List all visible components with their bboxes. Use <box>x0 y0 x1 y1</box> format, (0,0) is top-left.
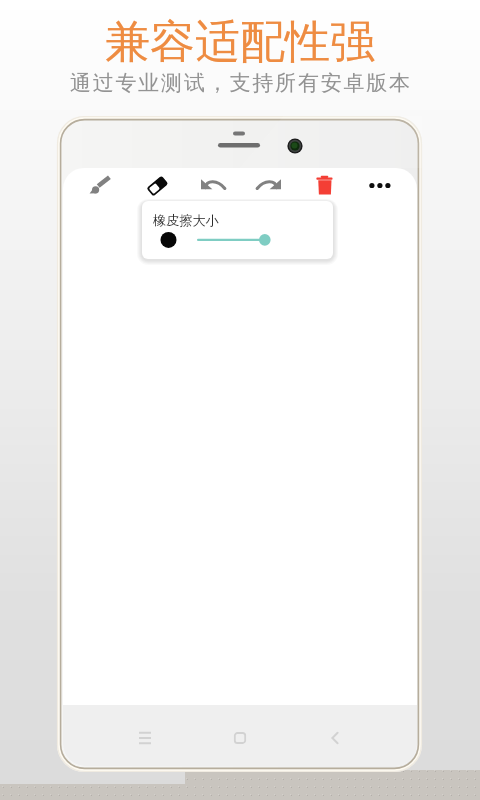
staticText: 橡皮擦大小 <box>153 212 219 229</box>
button[interactable]: Undo <box>194 168 232 204</box>
button[interactable]: Recents <box>123 716 167 760</box>
button[interactable]: 橡皮擦大小 <box>142 201 333 259</box>
staticText: 通过专业测试，支持所有安卓版本 <box>69 70 411 96</box>
button[interactable]: Back <box>313 716 357 760</box>
button[interactable]: Brush <box>81 168 119 204</box>
button[interactable]: Eraser <box>138 168 176 204</box>
button[interactable]: Home <box>218 716 262 760</box>
button[interactable]: Delete <box>306 168 344 204</box>
staticText: 兼容适配性强 <box>105 14 375 71</box>
button[interactable]: Redo <box>250 168 288 204</box>
button[interactable]: More options <box>361 168 399 204</box>
